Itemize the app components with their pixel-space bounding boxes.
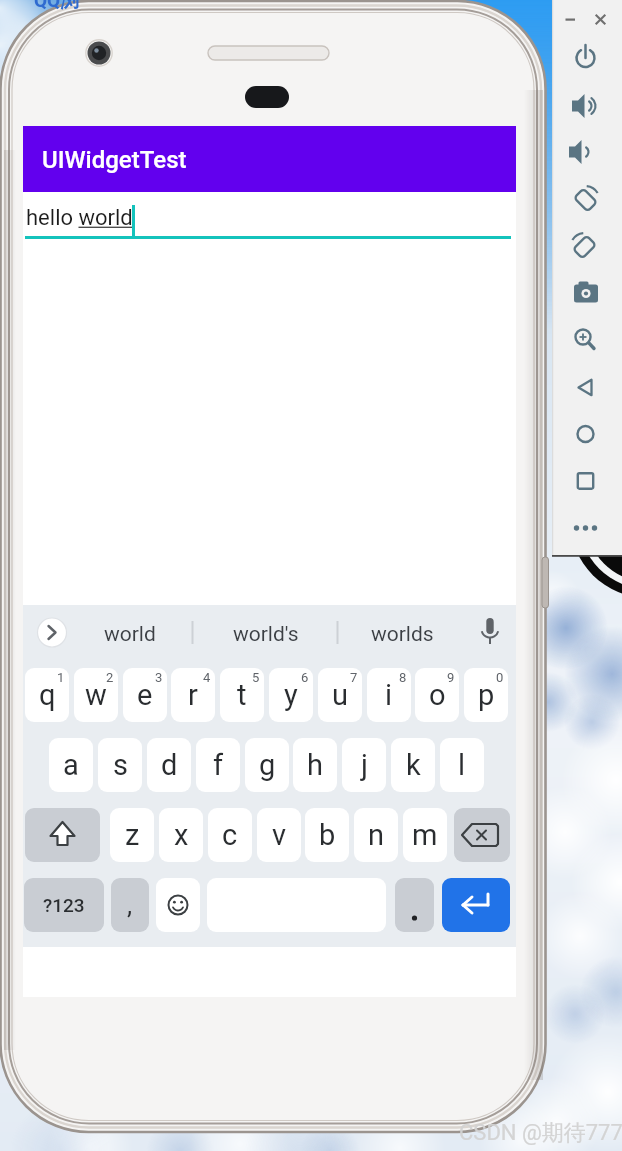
button[interactable]: l [440,738,484,792]
button[interactable] [569,230,603,264]
button[interactable] [454,808,510,862]
staticText: , [127,890,133,920]
staticText: t [237,678,247,712]
button[interactable] [569,511,603,545]
staticText: k [406,748,421,782]
button[interactable]: r [171,668,215,722]
button[interactable] [569,370,603,404]
button[interactable]: worlds [347,608,457,660]
button[interactable]: v [257,808,301,862]
button[interactable] [569,322,603,356]
staticText: 2 [106,670,114,685]
button[interactable] [442,878,510,932]
staticText: a [63,748,79,782]
staticText: m [412,818,438,852]
button[interactable]: a [49,738,93,792]
staticText: 3 [155,670,163,685]
staticText: 0 [496,670,504,685]
staticText: b [319,818,336,852]
staticText: h [307,748,323,782]
button[interactable]: p [464,668,508,722]
button[interactable]: z [110,808,154,862]
button[interactable]: i [367,668,411,722]
staticText: l [458,748,466,782]
staticText: CSDN @期待777 [459,1119,622,1147]
staticText: r [188,678,198,712]
staticText: world's [233,622,299,647]
staticText: d [161,748,178,782]
button[interactable]: ?123 [24,878,104,932]
button[interactable]: t [220,668,264,722]
button[interactable]: k [391,738,435,792]
staticText: o [429,678,446,712]
staticText: 1 [57,670,65,685]
staticText: worlds [371,622,434,647]
button[interactable] [23,192,516,240]
staticText: 7 [350,670,358,685]
button[interactable]: q [25,668,69,722]
button[interactable]: , [111,878,149,932]
button[interactable]: g [245,738,289,792]
button[interactable]: n [354,808,398,862]
button[interactable] [569,41,603,75]
button[interactable]: h [293,738,337,792]
button[interactable]: x [159,808,203,862]
staticText: y [284,678,298,712]
staticText: g [259,748,276,782]
button[interactable]: y [269,668,313,722]
staticText: q [39,678,56,712]
staticText: s [113,748,128,782]
button[interactable] [561,11,579,29]
staticText: z [125,818,140,852]
button[interactable]: o [415,668,459,722]
button[interactable] [569,464,603,498]
button[interactable]: u [318,668,362,722]
button[interactable] [592,11,610,29]
button[interactable] [473,614,507,650]
staticText: 5 [252,670,260,685]
button[interactable] [569,183,603,217]
button[interactable]: world's [211,608,321,660]
button[interactable] [395,878,434,932]
staticText: 8 [399,670,407,685]
staticText: QQ浏 [34,0,80,13]
button[interactable]: b [305,808,349,862]
button[interactable]: f [196,738,240,792]
staticText: 9 [447,670,455,685]
staticText: e [137,678,153,712]
staticText: n [368,818,385,852]
button[interactable] [569,135,603,169]
button[interactable]: e [123,668,167,722]
button[interactable]: c [208,808,252,862]
staticText: w [85,678,107,712]
staticText: c [222,818,238,852]
staticText: 4 [203,670,211,685]
button[interactable]: j [342,738,386,792]
staticText: p [478,678,495,712]
staticText: v [272,818,287,852]
staticText: x [174,818,189,852]
staticText: i [385,678,393,712]
staticText: u [332,678,348,712]
button[interactable]: m [403,808,447,862]
staticText: ?123 [43,894,85,916]
button[interactable] [37,617,68,648]
button[interactable] [569,417,603,451]
staticText: world [104,622,156,647]
button[interactable]: w [74,668,118,722]
button[interactable]: world [75,608,185,660]
staticText: 6 [301,670,309,685]
staticText: f [213,748,224,782]
button[interactable] [569,276,603,310]
staticText: UIWidgetTest [42,146,187,174]
button[interactable] [25,808,100,862]
staticText: hello world [26,205,133,231]
button[interactable] [156,878,200,932]
button[interactable]: s [98,738,142,792]
button[interactable]: d [147,738,191,792]
staticText: j [361,748,368,782]
button[interactable] [569,89,603,123]
